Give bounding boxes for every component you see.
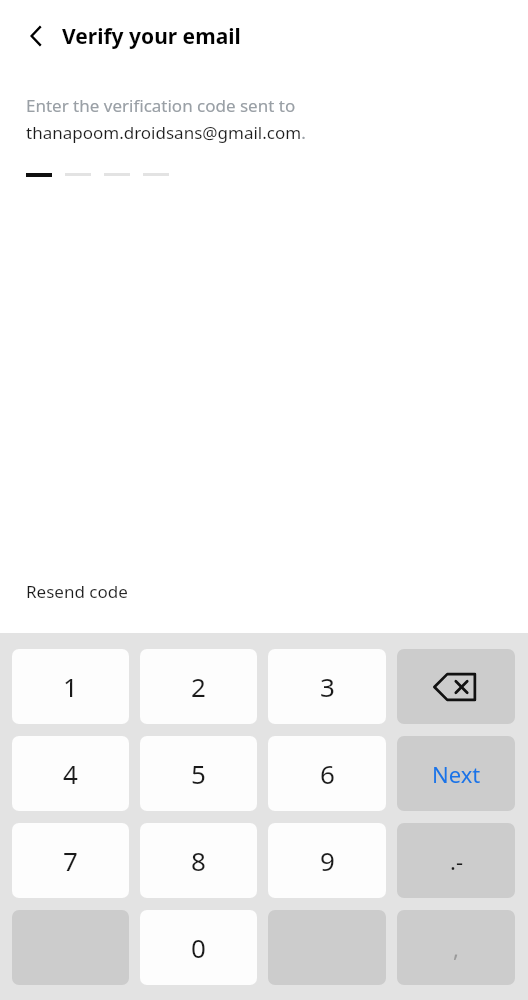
staticText: Next — [432, 759, 481, 789]
button[interactable]: Eight — [140, 823, 257, 898]
button[interactable]: Six — [268, 736, 386, 811]
button[interactable]: Backspace — [397, 649, 515, 724]
button[interactable]: Back — [14, 14, 58, 58]
button[interactable]: Three — [268, 649, 386, 724]
button[interactable]: Five — [140, 736, 257, 811]
staticText: Resend code — [26, 580, 128, 603]
button[interactable]: Zero — [140, 910, 257, 985]
button[interactable]: Two — [140, 649, 257, 724]
button[interactable]: Four — [12, 736, 129, 811]
button[interactable]: Period and dash — [397, 823, 515, 898]
staticText: Verify your email — [62, 22, 241, 51]
staticText: 7 — [63, 843, 78, 878]
button[interactable]: Nine — [268, 823, 386, 898]
staticText: .- — [450, 846, 463, 876]
button[interactable]: Resend code — [26, 580, 128, 603]
button[interactable]: Next — [397, 736, 515, 811]
staticText: 4 — [63, 756, 78, 791]
staticText: 6 — [320, 756, 335, 791]
staticText: 2 — [191, 669, 206, 704]
staticText: 5 — [191, 756, 206, 791]
staticText: 1 — [63, 669, 78, 704]
staticText: 0 — [191, 930, 206, 965]
staticText: 3 — [320, 669, 335, 704]
staticText: 8 — [191, 843, 206, 878]
staticText: 9 — [320, 843, 335, 878]
staticText: , — [453, 933, 459, 963]
button[interactable]: One — [12, 649, 129, 724]
button[interactable]: Seven — [12, 823, 129, 898]
staticText: Enter the verification code sent to than… — [26, 94, 306, 144]
